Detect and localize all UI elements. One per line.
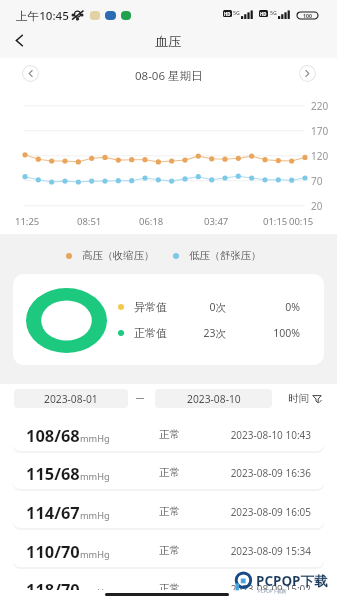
staticText: 08:51 [77,215,102,228]
button[interactable]: 118/70 [13,571,324,600]
staticText: mmHg [80,470,110,483]
staticText: 2023-08-09 16:36 [213,466,311,480]
staticText: 220 [311,99,329,113]
staticText: 100% [245,326,300,340]
staticText: 5G [270,9,277,16]
button[interactable]: 108/68 [13,417,324,451]
staticText: HD [260,11,267,17]
staticText: 时间 [288,392,309,405]
button[interactable]: Previous day [22,65,39,82]
staticText: 00:15 [289,215,314,228]
staticText: 正常值 [134,326,167,340]
staticText: 01:15 [263,215,288,228]
button[interactable]: 114/67 [13,494,324,528]
staticText: 正常 [159,544,180,557]
button[interactable]: 110/70 [13,533,324,567]
staticText: 06:18 [139,215,164,228]
staticText: 2023-08-09 16:05 [213,505,311,519]
staticText: 正常 [159,505,180,518]
staticText: 118/70 [26,578,80,600]
staticText: mmHg [80,509,110,522]
staticText: 115/68 [26,462,80,484]
staticText: 110/70 [26,540,80,562]
staticText: mmHg [80,586,110,599]
staticText: 20 [311,199,323,213]
staticText: 08-06 星期日 [135,68,203,84]
staticText: 低压（舒张压） [189,249,262,262]
staticText: 5G [233,9,240,16]
button[interactable]: 2023-08-01 [14,389,128,408]
button[interactable]: 时间 [288,389,322,408]
staticText: 170 [311,124,329,138]
staticText: 高压（收缩压） [82,249,155,262]
staticText: 异常值 [134,300,167,314]
staticText: 0% [245,300,300,314]
button[interactable]: Back [6,27,32,53]
staticText: 11:25 [15,215,40,228]
staticText: 正常 [159,466,180,479]
staticText: 0次 [170,300,226,314]
staticText: PCPOP下载 [256,572,328,590]
staticText: 23次 [170,326,226,340]
staticText: 2023-08-01 [44,392,98,406]
staticText: 2023-08-10 10:43 [213,428,311,442]
button[interactable]: 2023-08-10 [155,389,272,408]
staticText: PCPOP下载网 [258,588,287,594]
staticText: HD [224,11,231,17]
staticText: 100 [303,12,312,19]
staticText: mmHg [80,548,110,561]
staticText: 2023-08-10 [187,392,241,406]
button[interactable]: 115/68 [13,455,324,489]
staticText: 03:47 [204,215,229,228]
button[interactable]: Next day [299,65,316,82]
staticText: 2023-08-09 15:02 [213,582,311,596]
staticText: 108/68 [26,424,80,446]
staticText: 120 [311,149,329,163]
staticText: 正常 [159,428,180,441]
staticText: mmHg [80,432,110,445]
staticText: 70 [311,174,323,188]
staticText: 血压 [155,33,182,50]
staticText: 114/67 [26,501,80,523]
staticText: 2023-08-09 15:34 [213,544,311,558]
staticText: 上午10:45 [16,8,69,24]
staticText: 正常 [159,582,180,595]
